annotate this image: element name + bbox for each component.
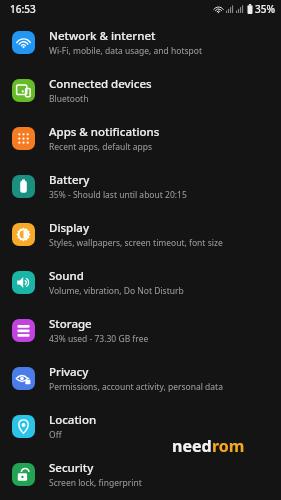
- staticText: Wi-Fi, mobile, data usage, and hotspot: [49, 45, 202, 57]
- button[interactable]: Location: [0, 402, 281, 450]
- staticText: 43% used - 73.30 GB free: [49, 333, 149, 345]
- staticText: Off: [49, 429, 62, 441]
- staticText: Recent apps, default apps: [49, 141, 153, 153]
- button[interactable]: Network & internet: [0, 18, 281, 66]
- button[interactable]: Apps & notifications: [0, 114, 281, 162]
- button[interactable]: Privacy: [0, 354, 281, 402]
- staticText: Permissions, account activity, personal …: [49, 381, 223, 393]
- staticText: 35%: [255, 2, 275, 16]
- staticText: Battery: [49, 172, 90, 188]
- staticText: Apps & notifications: [49, 124, 160, 140]
- staticText: Sound: [49, 268, 84, 284]
- staticText: Privacy: [49, 364, 89, 380]
- staticText: need: [172, 435, 212, 457]
- staticText: Security: [49, 460, 94, 476]
- staticText: Connected devices: [49, 76, 152, 92]
- staticText: Storage: [49, 316, 92, 332]
- staticText: Location: [49, 412, 97, 428]
- button[interactable]: Storage: [0, 306, 281, 354]
- staticText: Display: [49, 220, 89, 236]
- staticText: Volume, vibration, Do Not Disturb: [49, 285, 184, 297]
- staticText: 35% - Should last until about 20:15: [49, 189, 187, 201]
- staticText: rom: [212, 435, 245, 457]
- staticText: 16:53: [10, 2, 36, 16]
- staticText: Styles, wallpapers, screen timeout, font…: [49, 237, 223, 249]
- staticText: Bluetooth: [49, 93, 89, 105]
- staticText: Screen lock, fingerprint: [49, 477, 142, 489]
- button[interactable]: Connected devices: [0, 66, 281, 114]
- button[interactable]: Battery: [0, 162, 281, 210]
- button[interactable]: Sound: [0, 258, 281, 306]
- staticText: Network & internet: [49, 28, 156, 44]
- button[interactable]: Security: [0, 450, 281, 498]
- button[interactable]: Display: [0, 210, 281, 258]
